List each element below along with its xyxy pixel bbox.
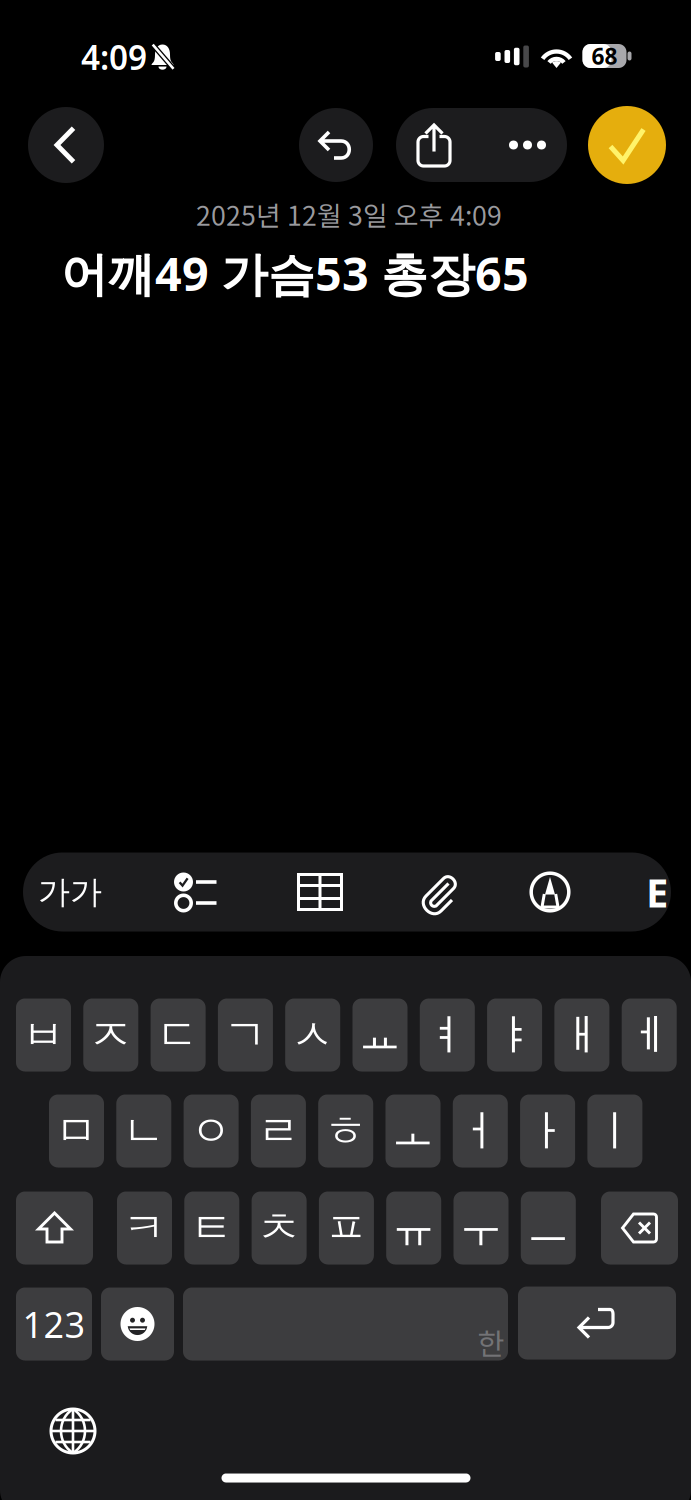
button[interactable]: ㅊ	[252, 1191, 307, 1264]
button[interactable]: Back	[28, 107, 104, 183]
button[interactable]: ㅋ	[117, 1191, 172, 1264]
button[interactable]: Space	[183, 1287, 508, 1360]
button[interactable]: ㅈ	[83, 998, 138, 1071]
staticText: 어깨49 가슴53 총장65	[61, 242, 529, 304]
button[interactable]: ㅣ	[587, 1094, 642, 1167]
button[interactable]: ㅡ	[521, 1191, 576, 1264]
button[interactable]: More	[485, 108, 570, 182]
staticText: ㅁ	[55, 1105, 98, 1157]
staticText: ㅈ	[89, 1009, 132, 1061]
staticText: ㄴ	[122, 1105, 165, 1157]
button[interactable]: ㅜ	[453, 1191, 508, 1264]
button[interactable]: ㅠ	[386, 1191, 441, 1264]
button[interactable]: ㄹ	[251, 1094, 306, 1167]
staticText: ㅏ	[526, 1105, 569, 1157]
staticText: ㅗ	[391, 1105, 434, 1157]
button[interactable]: ㅏ	[520, 1094, 575, 1167]
button[interactable]: ㅔ	[622, 998, 677, 1071]
button[interactable]: More tools	[642, 852, 672, 931]
staticText: ㅛ	[358, 1009, 401, 1061]
button[interactable]: ㄴ	[116, 1094, 171, 1167]
button[interactable]: Checklist	[161, 852, 231, 931]
button[interactable]: Return	[518, 1286, 676, 1359]
button[interactable]: Undo	[299, 108, 373, 182]
button[interactable]: ㄷ	[151, 998, 206, 1071]
staticText: ㅓ	[459, 1105, 502, 1157]
button[interactable]: Markup	[515, 852, 585, 931]
button[interactable]: Share	[391, 108, 477, 182]
button[interactable]: ㅁ	[49, 1094, 104, 1167]
button[interactable]: Attach	[404, 852, 474, 931]
staticText: E	[646, 865, 668, 918]
button[interactable]: Delete	[601, 1191, 678, 1264]
staticText: ㅎ	[324, 1105, 367, 1157]
button[interactable]: ㅑ	[487, 998, 542, 1071]
staticText: ㅋ	[123, 1202, 166, 1254]
button[interactable]: ㅎ	[318, 1094, 373, 1167]
button[interactable]: Emoji	[101, 1287, 174, 1360]
button[interactable]: ㅂ	[16, 998, 71, 1071]
staticText: 123	[22, 1300, 85, 1348]
staticText: ㅐ	[560, 1009, 603, 1061]
staticText: ㅇ	[190, 1105, 233, 1157]
button[interactable]: ㅅ	[285, 998, 340, 1071]
button[interactable]: ㅍ	[319, 1191, 374, 1264]
staticText: 2025년 12월 3일 오후 4:09	[196, 195, 502, 233]
button[interactable]: ㅌ	[184, 1191, 239, 1264]
staticText: ㅕ	[426, 1009, 469, 1061]
staticText: ㅌ	[190, 1202, 233, 1254]
staticText: ㅜ	[459, 1202, 502, 1254]
button[interactable]: Next keyboard	[43, 1401, 103, 1461]
staticText: ㅍ	[325, 1202, 368, 1254]
staticText: ㅔ	[628, 1009, 671, 1061]
staticText: ㄱ	[224, 1009, 267, 1061]
button[interactable]: ㅗ	[385, 1094, 440, 1167]
button[interactable]: ㅛ	[352, 998, 407, 1071]
staticText: ㅡ	[527, 1202, 570, 1254]
button[interactable]: ㅓ	[453, 1094, 508, 1167]
staticText: ㅅ	[291, 1009, 334, 1061]
staticText: 가가	[38, 872, 102, 912]
button[interactable]: 가가	[24, 852, 116, 931]
button[interactable]: Shift	[16, 1191, 93, 1264]
staticText: ㅑ	[493, 1009, 536, 1061]
button[interactable]: Table	[285, 852, 355, 931]
button[interactable]: Done	[588, 106, 666, 184]
staticText: 68	[591, 41, 617, 71]
button[interactable]: ㅕ	[420, 998, 475, 1071]
staticText: ㅂ	[22, 1009, 65, 1061]
staticText: 한	[477, 1321, 504, 1363]
staticText: ㄹ	[257, 1105, 300, 1157]
staticText: ㄷ	[157, 1009, 200, 1061]
button[interactable]: ㅐ	[554, 998, 609, 1071]
button[interactable]: 123	[16, 1287, 92, 1360]
button[interactable]: ㄱ	[218, 998, 273, 1071]
staticText: 4:09	[81, 35, 147, 79]
staticText: ㅊ	[258, 1202, 301, 1254]
staticText: ㅣ	[593, 1105, 636, 1157]
button[interactable]: ㅇ	[184, 1094, 239, 1167]
staticText: ㅠ	[392, 1202, 435, 1254]
